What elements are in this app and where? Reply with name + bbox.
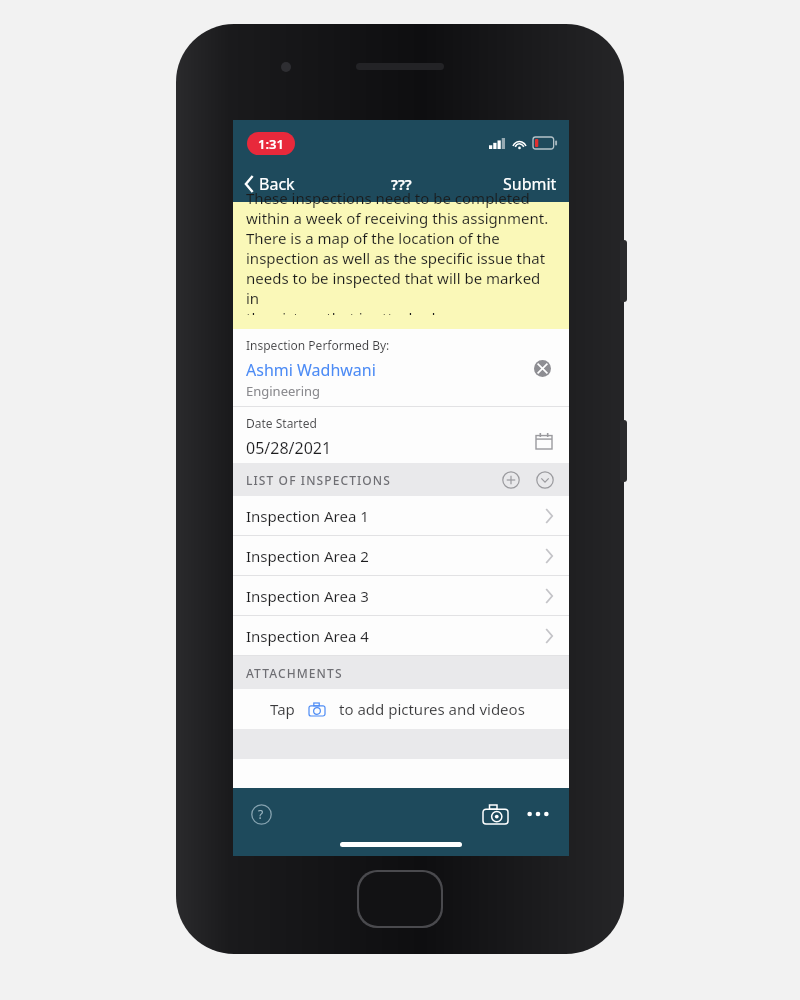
button[interactable]: Pick date [533, 430, 555, 452]
staticText: Inspection Performed By: [246, 337, 390, 353]
staticText: to add pictures and videos [339, 699, 525, 719]
staticText: Back [259, 173, 295, 195]
staticText: Submit [503, 173, 557, 195]
staticText: LIST OF INSPECTIONS [246, 472, 391, 488]
button[interactable]: More options [523, 799, 553, 829]
staticText: Ashmi Wadhwani [246, 359, 376, 381]
staticText: Engineering [246, 382, 321, 400]
staticText: Inspection Area 3 [246, 586, 369, 606]
staticText: ATTACHMENTS [246, 665, 343, 681]
button[interactable]: Back [233, 169, 305, 199]
staticText: ? [258, 806, 264, 822]
staticText: Inspection Area 2 [246, 546, 369, 566]
button[interactable]: Add inspection [499, 468, 523, 492]
button[interactable]: Inspection Area 2 [233, 536, 569, 576]
button[interactable]: Date Started [233, 407, 569, 463]
staticText: Date Started [246, 415, 317, 431]
staticText: 05/28/2021 [246, 437, 332, 459]
staticText: ??? [391, 174, 412, 194]
button[interactable]: Collapse [533, 468, 557, 492]
button[interactable]: Camera [479, 798, 511, 830]
button[interactable]: Clear [529, 355, 555, 381]
button[interactable]: Tap [233, 689, 569, 729]
button[interactable]: Inspection Area 4 [233, 616, 569, 656]
staticText: Inspection Area 4 [246, 626, 369, 646]
button[interactable]: Inspection Area 1 [233, 496, 569, 536]
staticText: needs to be inspected that will be marke… [246, 268, 556, 308]
button[interactable]: Help [247, 800, 275, 828]
staticText: 1:31 [258, 135, 284, 153]
staticText: the picture that is attached. [246, 308, 440, 315]
button[interactable]: Submit [491, 169, 569, 199]
staticText: within a week of receiving this assignme… [246, 208, 549, 228]
button[interactable]: Inspection Performed By: [233, 329, 569, 407]
button[interactable]: Home [359, 872, 441, 926]
staticText: There is a map of the location of the [246, 228, 500, 248]
staticText: Inspection Area 1 [246, 506, 369, 526]
staticText: Tap [270, 699, 295, 719]
staticText: These inspections need to be completed [246, 188, 530, 208]
staticText: inspection as well as the specific issue… [246, 248, 546, 268]
button[interactable]: Inspection Area 3 [233, 576, 569, 616]
